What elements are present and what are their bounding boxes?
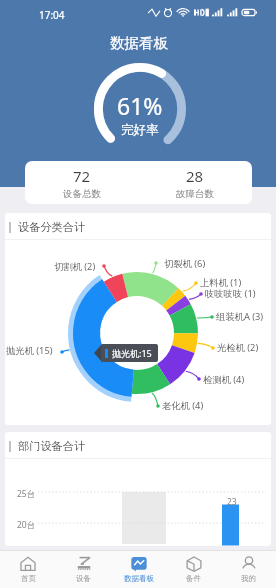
staticText: 我的 [241,574,256,583]
staticText: 23 [227,496,237,508]
staticText: 备件 [186,574,201,583]
staticText: 设备 [76,574,91,583]
staticText: 61% [117,90,163,121]
staticText: 72 [73,166,91,186]
button[interactable]: 设备 [56,551,111,588]
other: 备件 [186,556,202,572]
staticText: 设备总数 [63,188,101,200]
staticText: 组装机A (3) [216,310,264,323]
staticText: 老化机 (4) [162,399,204,412]
button[interactable]: 首页 [0,551,56,588]
staticText: 数据看板 [110,34,168,52]
staticText: 17:04 [39,8,65,22]
staticText: 28 [186,166,204,186]
staticText: 光检机 (2) [217,341,259,354]
staticText: 25台 [17,488,36,500]
other: 我的 [241,556,257,572]
staticText: 抛光机 (15) [6,344,53,357]
staticText: 部门设备合计 [18,439,86,453]
staticText: 设备分类合计 [18,220,86,234]
staticText: 数据看板 [124,574,154,583]
button[interactable]: 我的 [221,551,276,588]
other: 设备 [76,556,92,572]
button[interactable]: 72 [25,161,138,204]
button[interactable]: 备件 [166,551,221,588]
staticText: 故障台数 [176,188,214,200]
staticText: 抛光机:15 [112,347,152,359]
button[interactable]: 28 [138,161,252,204]
staticText: 切割机 (2) [54,260,96,273]
staticText: 20台 [17,519,36,531]
other: 数据看板 [131,556,147,572]
staticText: 首页 [21,574,36,583]
staticText: 上料机 (1) [200,276,242,289]
staticText: 切裂机 (6) [164,257,206,270]
staticText: 检测机 (4) [203,373,245,386]
staticText: 完好率 [121,122,159,138]
button[interactable]: 数据看板 [111,551,166,588]
other: 首页 [20,556,36,572]
staticText: 吱吱吱吱 (1) [205,287,256,300]
